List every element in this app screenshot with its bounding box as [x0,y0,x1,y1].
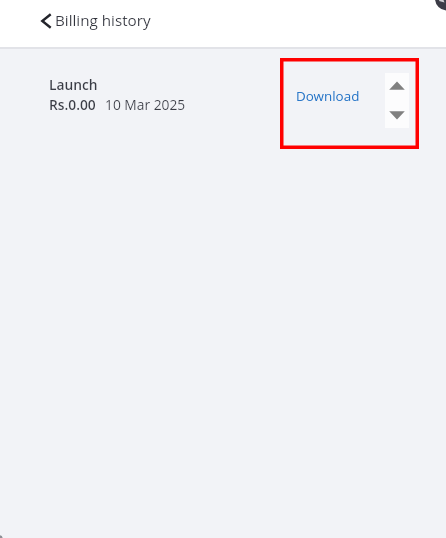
button[interactable]: Back [35,3,157,38]
button[interactable]: Download [291,83,365,109]
other: Back [41,13,52,29]
staticText: Download [296,87,360,105]
button[interactable]: Increase or decrease value [385,73,409,128]
staticText: Rs.0.00 [49,95,96,114]
staticText: Launch [49,75,98,94]
staticText: 10 Mar 2025 [105,95,186,114]
staticText: Billing history [55,10,151,31]
